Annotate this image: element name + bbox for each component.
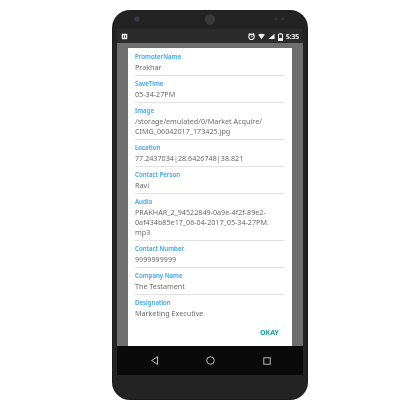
button[interactable]: SaveTime: [135, 79, 285, 106]
button[interactable]: Audio: [135, 197, 285, 244]
staticText: Marketing Executive: [135, 308, 204, 318]
staticText: Contact Person: [135, 170, 181, 178]
button[interactable]: Company Name: [135, 271, 285, 298]
staticText: /storage/emulated/0/Market Acquire/: [135, 116, 262, 126]
staticText: Company Name: [135, 271, 183, 279]
staticText: SaveTime: [135, 79, 164, 87]
button[interactable]: Contact Number: [135, 244, 285, 271]
staticText: Prakhar: [135, 62, 162, 72]
staticText: Ravi: [135, 180, 150, 190]
staticText: Contact Number: [135, 244, 185, 252]
staticText: 05-34-27PM: [135, 89, 176, 99]
button[interactable]: Designation: [135, 298, 285, 321]
staticText: Designation: [135, 298, 171, 306]
staticText: mp3: [135, 227, 151, 237]
staticText: Image: [135, 106, 154, 114]
staticText: The Testament: [135, 281, 185, 291]
staticText: 5:35: [286, 32, 299, 41]
button[interactable]: Recent apps: [247, 346, 287, 375]
staticText: PromoterName: [135, 52, 181, 60]
staticText: Audio: [135, 197, 153, 205]
button[interactable]: Home: [190, 346, 230, 375]
button[interactable]: Contact Person: [135, 170, 285, 197]
staticText: Location: [135, 143, 161, 151]
staticText: PRAKHAR_2_94522849-0a9e-4f2f-89e2-: [135, 207, 266, 217]
staticText: OKAY: [260, 328, 279, 337]
staticText: CIMG_06042017_173425.jpg: [135, 126, 231, 136]
staticText: 9999999999: [135, 254, 177, 264]
staticText: 77.2437034|28.6426748|38.821: [135, 153, 244, 163]
button[interactable]: PromoterName: [135, 52, 285, 79]
staticText: 0af434b85e17_06-04-2017_05-34-27PM.: [135, 217, 269, 227]
button[interactable]: Back: [134, 346, 174, 375]
button[interactable]: OKAY: [254, 325, 285, 340]
button[interactable]: Location: [135, 143, 285, 170]
button[interactable]: Image: [135, 106, 285, 143]
